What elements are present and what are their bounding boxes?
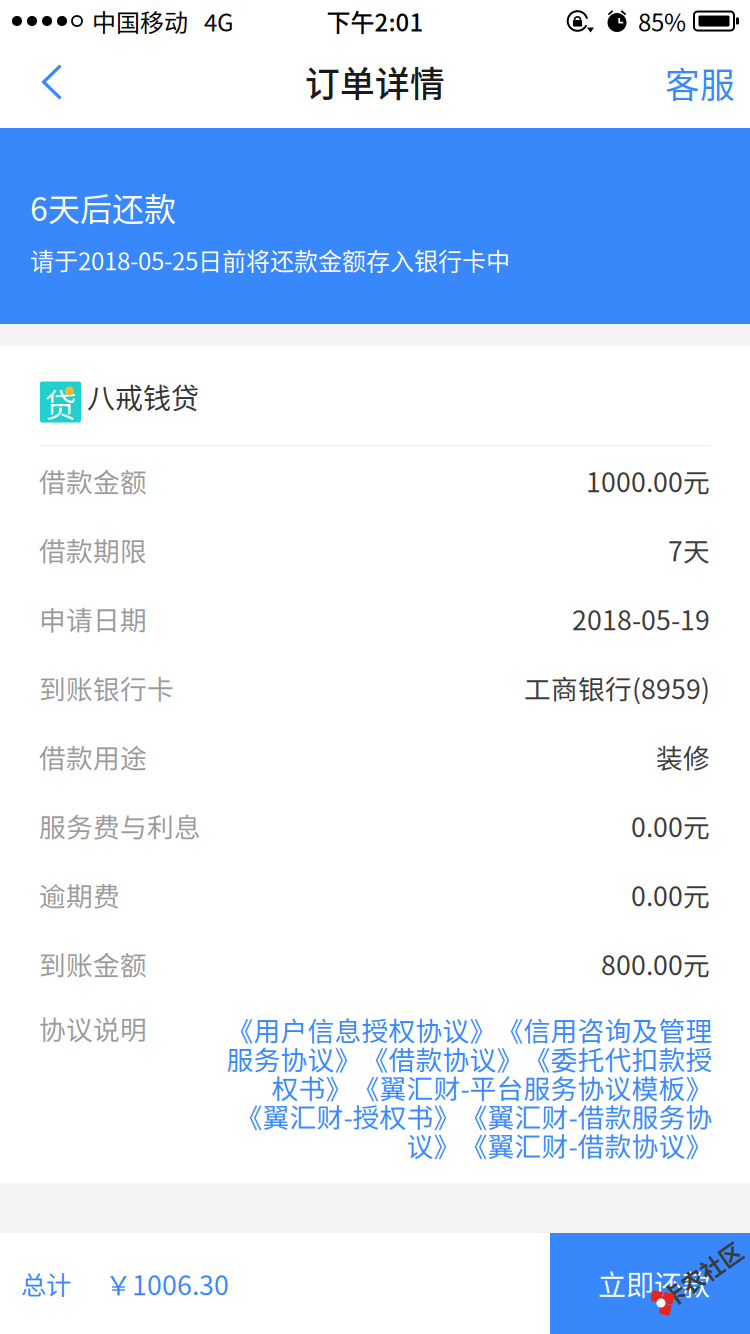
staticText: 立即还款 xyxy=(598,1263,710,1304)
staticText: 工商银行(8959) xyxy=(524,668,710,707)
staticText: 卡农社区 xyxy=(656,1257,748,1290)
staticText: 请于2018-05-25日前将还款金额存入银行卡中 xyxy=(30,242,510,277)
staticText: 借款期限 xyxy=(39,530,147,569)
staticText: 《用户信息授权协议》《信用咨询及管理服务协议》《借款协议》《委托代扣款授权书》《… xyxy=(226,1015,712,1159)
staticText: 订单详情 xyxy=(305,57,445,107)
staticText: 服务费与利息 xyxy=(39,806,201,845)
staticText: 1000.00元 xyxy=(586,461,710,500)
staticText: 装修 xyxy=(656,737,710,776)
staticText: 中国移动 xyxy=(92,4,188,38)
staticText: 85% xyxy=(638,4,686,38)
staticText: 0.00元 xyxy=(631,875,710,914)
staticText: 八戒钱贷 xyxy=(87,376,199,417)
staticText: 6天后还款 xyxy=(30,184,176,230)
staticText: 800.00元 xyxy=(601,944,710,983)
staticText: 逾期费 xyxy=(39,875,120,914)
staticText: 7天 xyxy=(668,530,710,569)
staticText: 总计 xyxy=(21,1265,71,1302)
staticText: 0.00元 xyxy=(631,806,710,845)
button[interactable]: 返回 xyxy=(0,45,87,125)
staticText: 协议说明 xyxy=(39,1009,147,1047)
staticText: 4G xyxy=(204,4,234,38)
button[interactable]: 客服 xyxy=(665,40,750,130)
button[interactable]: 立即还款 xyxy=(550,1233,750,1334)
staticText: 借款金额 xyxy=(39,461,147,500)
staticText: 下午2:01 xyxy=(326,4,423,38)
staticText: 到账银行卡 xyxy=(39,668,174,707)
staticText: 到账金额 xyxy=(39,944,147,983)
staticText: 贷 xyxy=(44,380,76,426)
staticText: 申请日期 xyxy=(39,599,147,638)
staticText: 2018-05-19 xyxy=(572,599,710,638)
staticText: 客服 xyxy=(665,58,735,108)
staticText: 借款用途 xyxy=(39,737,147,776)
staticText: ￥1006.30 xyxy=(105,1264,229,1303)
